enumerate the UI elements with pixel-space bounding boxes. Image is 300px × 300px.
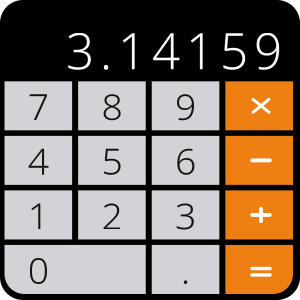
staticText: 9 (175, 81, 196, 131)
button[interactable]: Add (225, 190, 293, 239)
button[interactable]: 4 (4, 136, 72, 185)
button[interactable]: 1 (4, 190, 72, 239)
staticText: 2 (101, 190, 122, 240)
button[interactable]: Equals (225, 245, 293, 294)
button[interactable]: 2 (78, 190, 146, 239)
button[interactable]: 6 (152, 136, 219, 185)
button[interactable]: . (152, 245, 219, 294)
staticText: 6 (175, 136, 196, 185)
staticText: 4 (28, 136, 49, 185)
staticText: 5 (101, 136, 122, 185)
staticText: 0 (28, 245, 49, 294)
staticText: 3.14159 (66, 17, 282, 83)
staticText: 8 (101, 81, 122, 131)
button[interactable]: 5 (78, 136, 146, 185)
button[interactable]: Multiply (225, 81, 293, 130)
staticText: . (181, 245, 190, 294)
button[interactable]: Subtract (225, 136, 293, 185)
button[interactable]: 7 (4, 81, 72, 130)
button[interactable]: 8 (78, 81, 146, 130)
button[interactable]: 0 (4, 245, 146, 294)
staticText: 3 (175, 190, 196, 240)
button[interactable]: 9 (152, 81, 219, 130)
button[interactable]: 3 (152, 190, 219, 239)
staticText: 1 (28, 190, 49, 240)
staticText: 7 (28, 81, 49, 131)
